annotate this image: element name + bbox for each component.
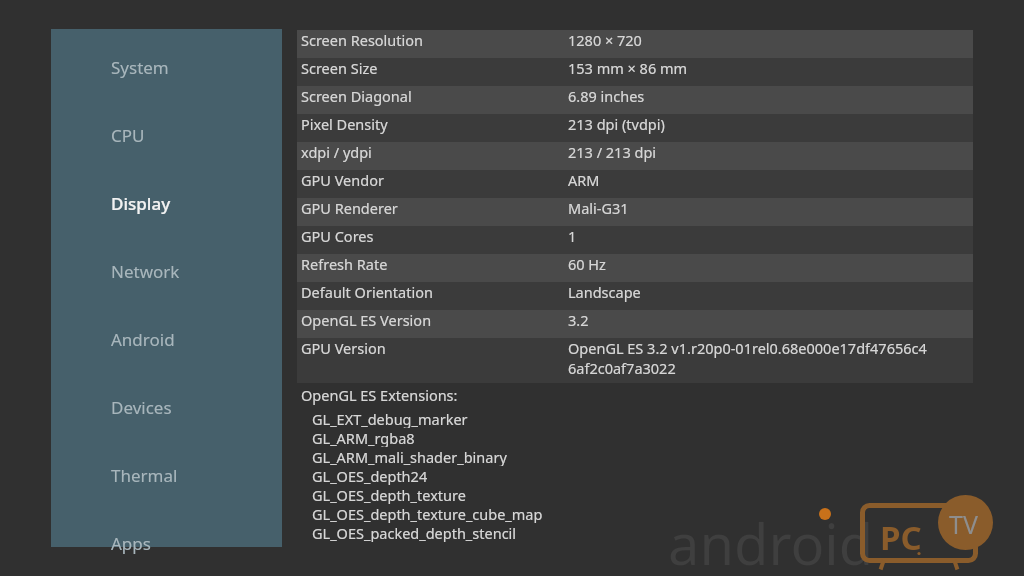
- staticText: GPU Renderer: [301, 198, 398, 218]
- staticText: GPU Cores: [301, 226, 374, 246]
- staticText: PC: [880, 515, 922, 560]
- staticText: Screen Size: [301, 58, 378, 78]
- staticText: 60 Hz: [568, 254, 606, 274]
- staticText: Display: [111, 192, 171, 215]
- button[interactable]: Screen Size: [297, 58, 973, 86]
- staticText: Landscape: [568, 282, 641, 302]
- staticText: Default Orientation: [301, 282, 433, 302]
- staticText: Mali-G31: [568, 198, 629, 218]
- staticText: Refresh Rate: [301, 254, 388, 274]
- staticText: GL_ARM_mali_shader_binary: [312, 447, 507, 466]
- staticText: Screen Diagonal: [301, 86, 412, 106]
- staticText: CPU: [111, 124, 145, 147]
- staticText: 6.89 inches: [568, 86, 645, 106]
- staticText: GL_ARM_rgba8: [312, 428, 415, 447]
- staticText: GPU Version: [301, 338, 386, 358]
- button[interactable]: Default Orientation: [297, 282, 973, 310]
- staticText: GL_OES_depth24: [312, 466, 428, 485]
- button[interactable]: OpenGL ES Version: [297, 310, 973, 338]
- staticText: GL_OES_depth_texture: [312, 485, 466, 504]
- staticText: 3.2: [568, 310, 589, 330]
- staticText: 213 / 213 dpi: [568, 142, 657, 162]
- button[interactable]: Android: [51, 319, 282, 359]
- staticText: 1: [568, 226, 577, 246]
- button[interactable]: GPU Version: [297, 338, 973, 383]
- staticText: xdpi / ydpi: [301, 142, 372, 162]
- button[interactable]: System: [51, 47, 282, 87]
- staticText: OpenGL ES Version: [301, 310, 432, 330]
- staticText: GL_OES_packed_depth_stencil: [312, 523, 517, 542]
- button[interactable]: Apps: [51, 523, 282, 563]
- staticText: android: [668, 505, 874, 576]
- staticText: OpenGL ES 3.2 v1.r20p0-01rel0.68e000e17d…: [568, 338, 927, 358]
- staticText: Devices: [111, 396, 172, 419]
- button[interactable]: Network: [51, 251, 282, 291]
- staticText: System: [111, 56, 169, 79]
- staticText: GL_OES_depth_texture_cube_map: [312, 504, 543, 523]
- button[interactable]: CPU: [51, 115, 282, 155]
- staticText: ARM: [568, 170, 600, 190]
- staticText: 213 dpi (tvdpi): [568, 114, 665, 134]
- staticText: Pixel Density: [301, 114, 388, 134]
- button[interactable]: Thermal: [51, 455, 282, 495]
- button[interactable]: Refresh Rate: [297, 254, 973, 282]
- button[interactable]: GPU Renderer: [297, 198, 973, 226]
- staticText: Android: [111, 328, 175, 351]
- button[interactable]: Screen Resolution: [297, 30, 973, 58]
- staticText: 1280 × 720: [568, 30, 642, 50]
- staticText: Network: [111, 260, 180, 283]
- staticText: Thermal: [111, 464, 178, 487]
- button[interactable]: Screen Diagonal: [297, 86, 973, 114]
- staticText: TV: [949, 507, 978, 541]
- button[interactable]: xdpi / ydpi: [297, 142, 973, 170]
- button[interactable]: GPU Vendor: [297, 170, 973, 198]
- button[interactable]: Pixel Density: [297, 114, 973, 142]
- staticText: Screen Resolution: [301, 30, 424, 50]
- staticText: OpenGL ES Extensions:: [301, 385, 458, 405]
- button[interactable]: GPU Cores: [297, 226, 973, 254]
- button[interactable]: Devices: [51, 387, 282, 427]
- staticText: Apps: [111, 532, 151, 555]
- staticText: 6af2c0af7a3022: [568, 358, 676, 378]
- staticText: GL_EXT_debug_marker: [312, 409, 468, 428]
- staticText: GPU Vendor: [301, 170, 384, 190]
- button[interactable]: Display: [51, 183, 282, 223]
- staticText: 153 mm × 86 mm: [568, 58, 688, 78]
